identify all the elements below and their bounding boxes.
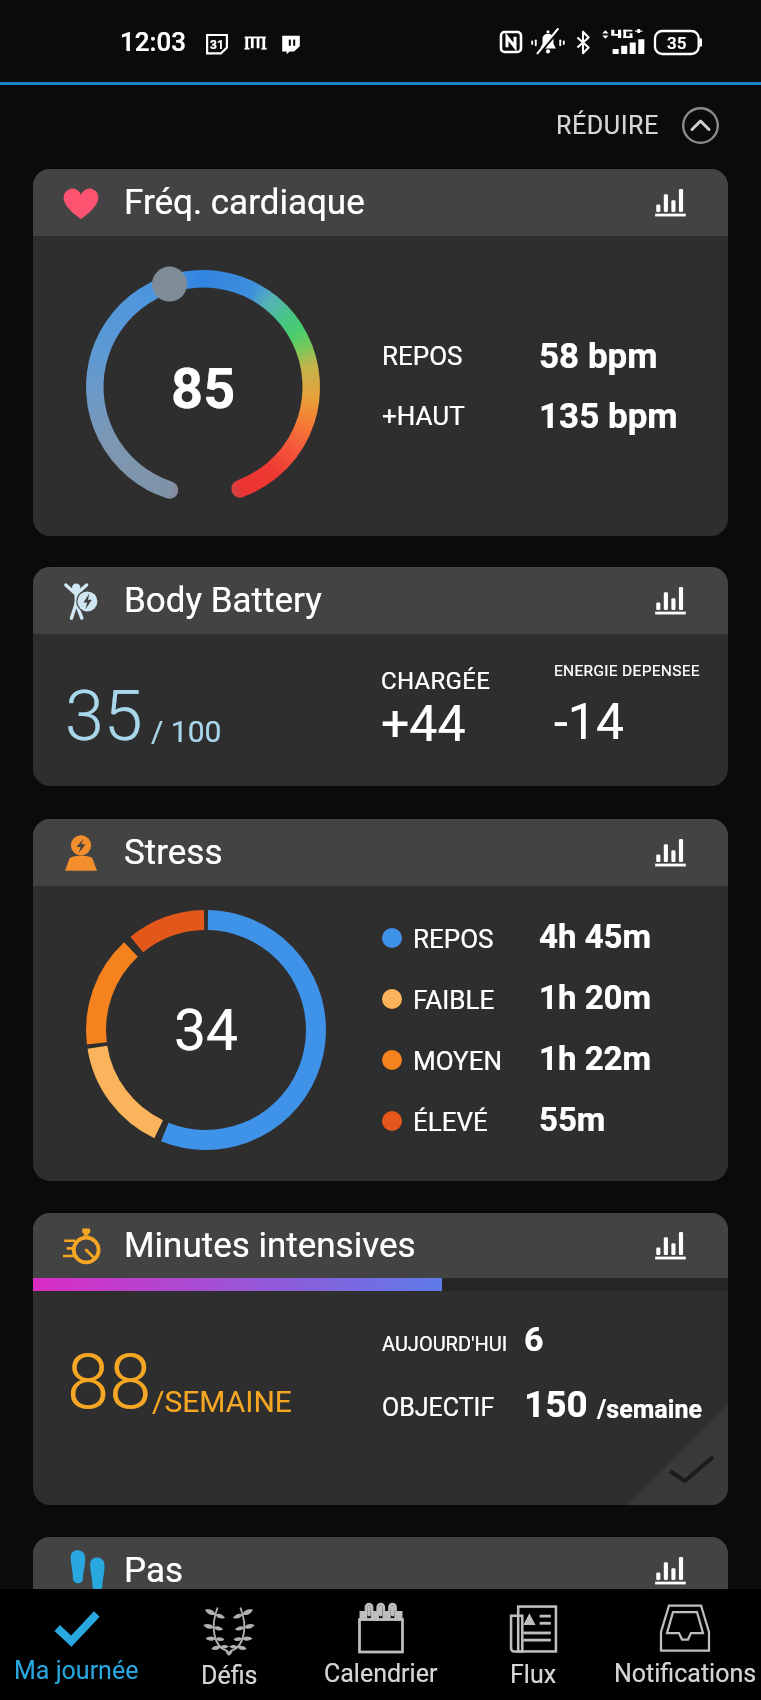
staticText: 135 bpm [539,396,678,437]
button[interactable]: Notifications [609,1589,761,1700]
button[interactable]: Body Battery [33,567,728,786]
button[interactable]: RÉDUIRE [546,99,761,156]
staticText: 88 [67,1337,152,1426]
button[interactable]: Calendrier [305,1589,457,1700]
staticText: 58 bpm [539,336,658,377]
staticText: /SEMAINE [152,1384,292,1419]
staticText: REPOS [413,924,494,954]
staticText: Fréq. cardiaque [124,182,365,223]
staticText: OBJECTIF [382,1393,495,1422]
staticText: Ma journée [14,1656,139,1685]
staticText: /semaine [597,1395,702,1424]
staticText: Calendrier [324,1659,438,1688]
staticText: 34 [174,997,239,1064]
staticText: FAIBLE [413,985,495,1015]
staticText: 4h 45m [539,917,652,956]
staticText: 6 [524,1319,544,1359]
staticText: 35 [667,33,687,53]
staticText: +44 [381,695,466,754]
button[interactable]: Minutes intensives [33,1213,728,1505]
staticText: Flux [510,1660,557,1689]
button[interactable]: Défis [153,1589,305,1700]
button[interactable]: Graphique [645,575,697,627]
button[interactable]: Graphique [645,1545,697,1597]
staticText: Body Battery [124,580,322,621]
staticText: Minutes intensives [124,1225,416,1266]
button[interactable]: Stress [33,819,728,1181]
staticText: ENERGIE DEPENSEE [554,662,700,680]
staticText: CHARGÉE [381,667,491,695]
staticText: 85 [171,356,236,422]
staticText: 35 [65,675,143,757]
staticText: 150 [524,1383,588,1426]
staticText: 1h 20m [539,978,652,1017]
button[interactable]: Graphique [645,177,697,229]
staticText: / 100 [151,714,222,749]
staticText: Pas [124,1550,183,1591]
staticText: AUJOURD'HUI [382,1332,508,1355]
staticText: REPOS [382,341,463,371]
button[interactable]: Pas [33,1537,728,1677]
staticText: 1h 22m [539,1039,652,1078]
button[interactable]: Graphique [645,1220,697,1272]
staticText: 12:03 [120,27,187,57]
staticText: 55m [539,1100,606,1139]
staticText: ÉLEVÉ [413,1107,488,1137]
staticText: +HAUT [382,401,465,431]
staticText: Défis [201,1661,258,1690]
staticText: MOYEN [413,1046,502,1076]
staticText: Stress [124,832,223,873]
button[interactable]: Graphique [645,827,697,879]
button[interactable]: Flux [457,1589,609,1700]
button[interactable]: Fréq. cardiaque [33,169,728,536]
staticText: -14 [554,693,625,752]
button[interactable]: Ma journée [0,1589,153,1700]
staticText: Notifications [614,1659,757,1688]
staticText: RÉDUIRE [556,111,659,140]
staticText: 31 [210,38,224,52]
